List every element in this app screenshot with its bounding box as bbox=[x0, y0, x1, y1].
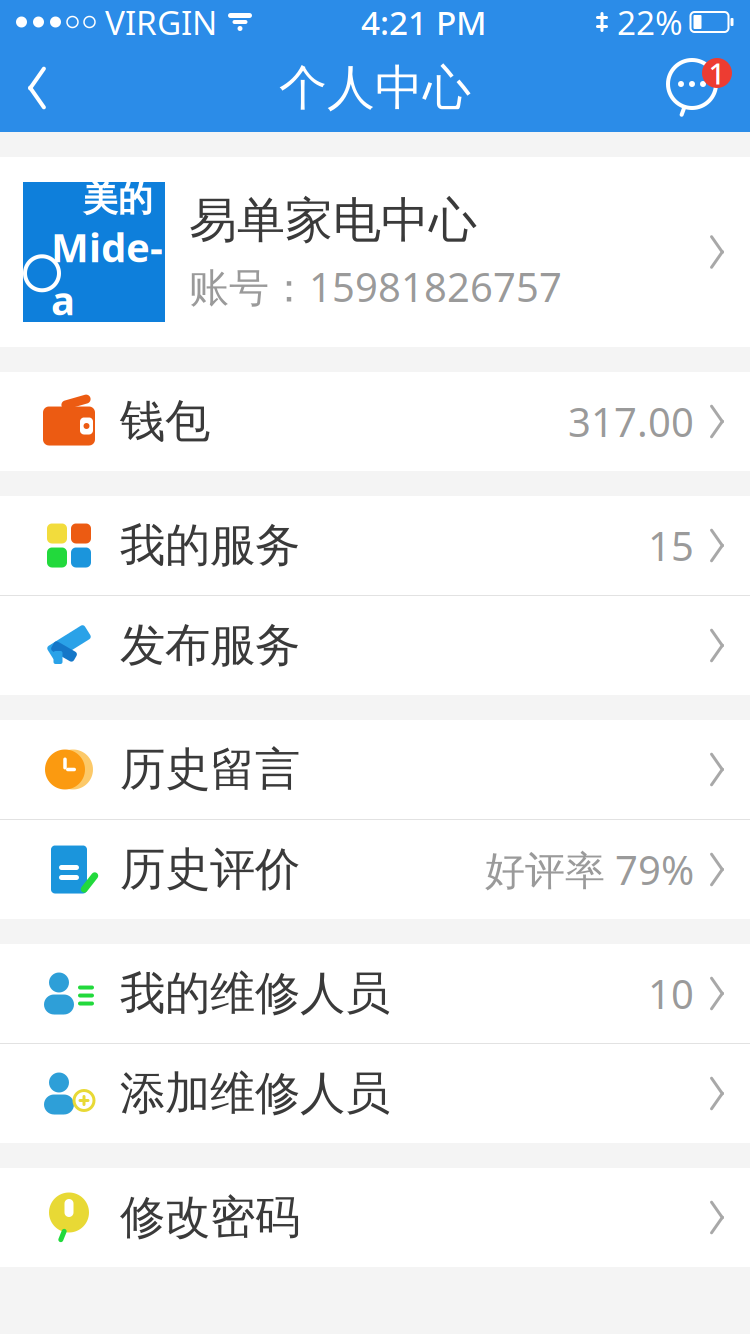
button[interactable]: Back bbox=[0, 44, 74, 132]
staticText: 历史留言 bbox=[120, 742, 300, 797]
staticText: 修改密码 bbox=[120, 1190, 300, 1245]
button[interactable]: 发布服务 bbox=[0, 596, 750, 695]
staticText: 钱包 bbox=[120, 394, 210, 449]
staticText: 易单家电中心 bbox=[189, 191, 477, 250]
button[interactable]: 历史评价 bbox=[0, 820, 750, 919]
button[interactable]: 我的服务 bbox=[0, 496, 750, 596]
button[interactable]: 修改密码 bbox=[0, 1168, 750, 1267]
staticText: 我的维修人员 bbox=[120, 966, 390, 1021]
button[interactable]: 我的维修人员 bbox=[0, 944, 750, 1044]
staticText: 账号：15981826757 bbox=[189, 260, 562, 313]
staticText: 22% bbox=[617, 0, 683, 44]
button[interactable]: 钱包 bbox=[0, 372, 750, 471]
button[interactable]: 添加维修人员 bbox=[0, 1044, 750, 1143]
staticText: 历史评价 bbox=[120, 842, 300, 897]
button[interactable]: 历史留言 bbox=[0, 720, 750, 820]
staticText: 317.00 bbox=[568, 395, 694, 448]
staticText: 4:21 PM bbox=[361, 0, 487, 44]
staticText: 好评率 79% bbox=[485, 843, 694, 896]
staticText: 添加维修人员 bbox=[120, 1066, 390, 1121]
staticText: 个人中心 bbox=[279, 58, 471, 117]
staticText: 15 bbox=[648, 519, 694, 572]
staticText: 发布服务 bbox=[120, 618, 300, 673]
button[interactable]: 美的 bbox=[0, 157, 750, 347]
staticText: 10 bbox=[648, 967, 694, 1020]
staticText: 美的 bbox=[83, 178, 153, 220]
staticText: VIRGIN bbox=[105, 0, 217, 44]
staticText: 1 bbox=[708, 53, 725, 92]
staticText: Midea bbox=[51, 220, 163, 326]
button[interactable]: Messages bbox=[650, 44, 750, 132]
staticText: 我的服务 bbox=[120, 518, 300, 573]
